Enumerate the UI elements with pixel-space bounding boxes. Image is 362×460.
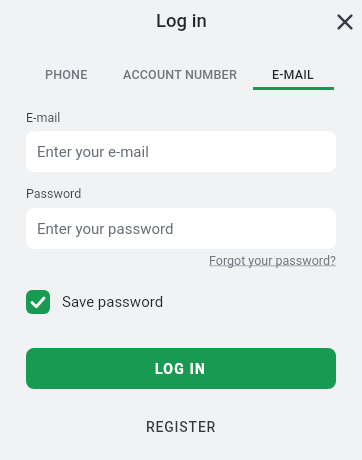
button[interactable]: Enter your e-mail — [26, 131, 336, 172]
staticText: REGISTER — [146, 419, 217, 435]
button[interactable]: Forgot your password? — [209, 253, 336, 268]
button[interactable]: LOG IN — [26, 348, 336, 389]
button[interactable]: ACCOUNT NUMBER — [107, 61, 253, 90]
button[interactable]: Enter your password — [26, 208, 336, 249]
button[interactable]: E-MAIL — [253, 61, 334, 90]
staticText: Enter your password — [37, 220, 174, 238]
button[interactable]: Save password — [26, 290, 164, 314]
staticText: Log in — [156, 10, 207, 32]
button[interactable] — [331, 8, 359, 36]
staticText: Password — [26, 186, 82, 201]
staticText: Enter your e-mail — [37, 143, 149, 161]
staticText: LOG IN — [155, 361, 207, 377]
staticText: Save password — [62, 293, 164, 311]
staticText: E-MAIL — [272, 67, 315, 82]
staticText: ACCOUNT NUMBER — [123, 67, 237, 82]
button[interactable]: PHONE — [26, 61, 107, 90]
button[interactable]: REGISTER — [0, 412, 362, 442]
staticText: PHONE — [45, 67, 88, 82]
staticText: E-mail — [26, 110, 61, 125]
